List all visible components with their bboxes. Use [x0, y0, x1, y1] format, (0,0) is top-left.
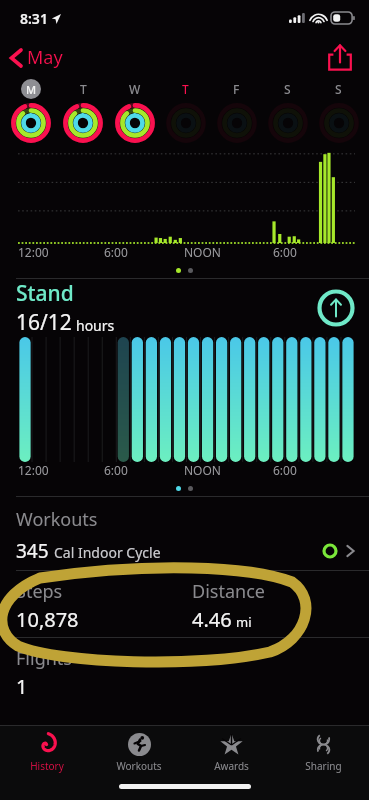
staticText: 6:00: [104, 244, 128, 260]
staticText: NOON: [184, 244, 221, 260]
staticText: W: [129, 81, 141, 97]
staticText: Distance: [192, 579, 265, 604]
button[interactable]: [266, 101, 310, 145]
staticText: May: [27, 45, 63, 70]
staticText: T: [80, 81, 87, 97]
button[interactable]: Awards: [185, 726, 277, 778]
staticText: 16/12: [16, 308, 72, 337]
staticText: S: [335, 81, 342, 97]
staticText: Awards: [214, 759, 249, 773]
button[interactable]: [113, 101, 157, 145]
staticText: 6:00: [273, 244, 297, 260]
staticText: mi: [236, 613, 252, 631]
button[interactable]: Share Stand: [317, 289, 355, 327]
staticText: History: [30, 759, 64, 773]
staticText: 8:31: [20, 9, 48, 28]
button[interactable]: 345: [0, 532, 369, 570]
button[interactable]: [61, 101, 105, 145]
staticText: F: [233, 81, 240, 97]
button[interactable]: History: [0, 726, 93, 778]
staticText: 6:00: [273, 462, 297, 478]
button[interactable]: Sharing: [277, 726, 369, 778]
staticText: Workouts: [16, 507, 98, 532]
staticText: 345: [16, 538, 49, 564]
staticText: 6:00: [104, 462, 128, 478]
button[interactable]: Share: [325, 42, 355, 72]
staticText: Workouts: [116, 759, 162, 773]
staticText: 4.46: [192, 606, 232, 633]
staticText: Stand: [16, 279, 74, 308]
button[interactable]: [9, 101, 53, 145]
staticText: 1: [16, 673, 28, 700]
staticText: 12:00: [18, 244, 49, 260]
staticText: Cal Indoor Cycle: [54, 543, 161, 562]
button[interactable]: [164, 101, 208, 145]
staticText: Steps: [16, 579, 63, 604]
staticText: 10,878: [16, 606, 79, 633]
staticText: NOON: [184, 462, 221, 478]
staticText: 12:00: [18, 462, 49, 478]
button[interactable]: May: [0, 45, 71, 70]
staticText: Sharing: [305, 759, 342, 773]
button[interactable]: [317, 101, 361, 145]
staticText: hours: [76, 316, 115, 335]
button[interactable]: [215, 101, 259, 145]
staticText: S: [284, 81, 291, 97]
button[interactable]: Workouts: [93, 726, 185, 778]
staticText: T: [182, 81, 189, 97]
staticText: Flights: [16, 646, 72, 671]
staticText: M: [26, 82, 37, 97]
